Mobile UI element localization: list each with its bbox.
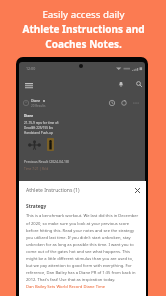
button[interactable]: Notifications [115, 78, 127, 90]
staticText: Dan Bailey Sets World Record Diane Time [26, 284, 106, 290]
button[interactable]: More options [131, 98, 141, 108]
staticText: Diane [24, 114, 34, 118]
staticText: Strategy [26, 203, 47, 210]
staticText: 20 Results [31, 104, 46, 108]
button[interactable]: Close [133, 186, 142, 195]
button[interactable]: Search [133, 78, 145, 90]
button[interactable]: Timer [107, 98, 117, 108]
staticText: Athlete Instructions (1) [26, 187, 80, 194]
button[interactable]: Leaderboard [119, 98, 129, 108]
button[interactable]: Dan Bailey Sets World Record Diane Time [26, 284, 106, 290]
staticText: Easily access daily [42, 8, 125, 21]
staticText: Time 7:21 | Rx'd [24, 167, 49, 171]
staticText: Previous Result (2024-04-18) [24, 159, 69, 164]
staticText: 12:00 [26, 66, 36, 71]
button[interactable]: Menu [22, 79, 35, 92]
staticText: Coaches Notes. [45, 37, 122, 51]
staticText: This is a benchmark workout. We last did… [26, 213, 140, 282]
staticText: 21-15-9 reps for time of: Deadlift 225/1… [24, 121, 59, 135]
staticText: Athlete Instructions and [22, 22, 145, 36]
staticText: Diane [31, 98, 41, 103]
